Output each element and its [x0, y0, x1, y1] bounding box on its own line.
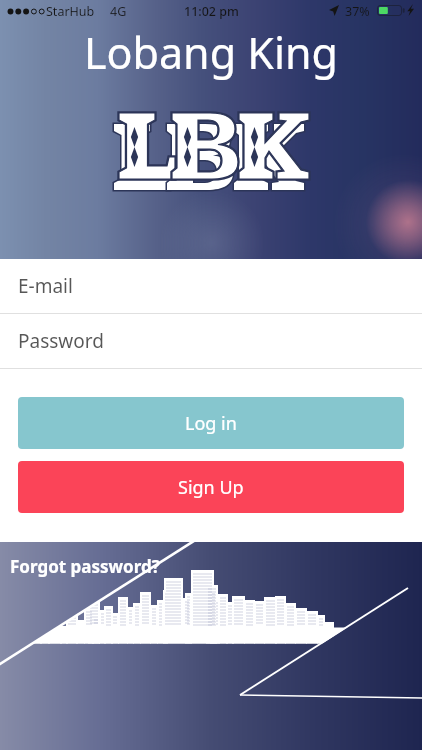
button[interactable]: Forgot password? [10, 555, 160, 578]
staticText: Log in [185, 411, 237, 436]
staticText: 11:02 pm [184, 3, 239, 20]
button[interactable]: Password [0, 314, 422, 369]
staticText: Password [18, 328, 104, 354]
button[interactable]: Sign Up [18, 461, 404, 513]
staticText: Lobang King [84, 23, 339, 82]
staticText: 37% [345, 3, 370, 20]
staticText: StarHub [46, 3, 95, 20]
button[interactable]: E-mail [0, 259, 422, 314]
staticText: Sign Up [178, 475, 244, 500]
button[interactable]: Log in [18, 397, 404, 449]
staticText: E-mail [18, 273, 73, 299]
staticText: Forgot password? [10, 555, 160, 578]
staticText: 4G [110, 3, 127, 20]
other: Charging [407, 4, 414, 16]
other: Location [329, 5, 339, 16]
